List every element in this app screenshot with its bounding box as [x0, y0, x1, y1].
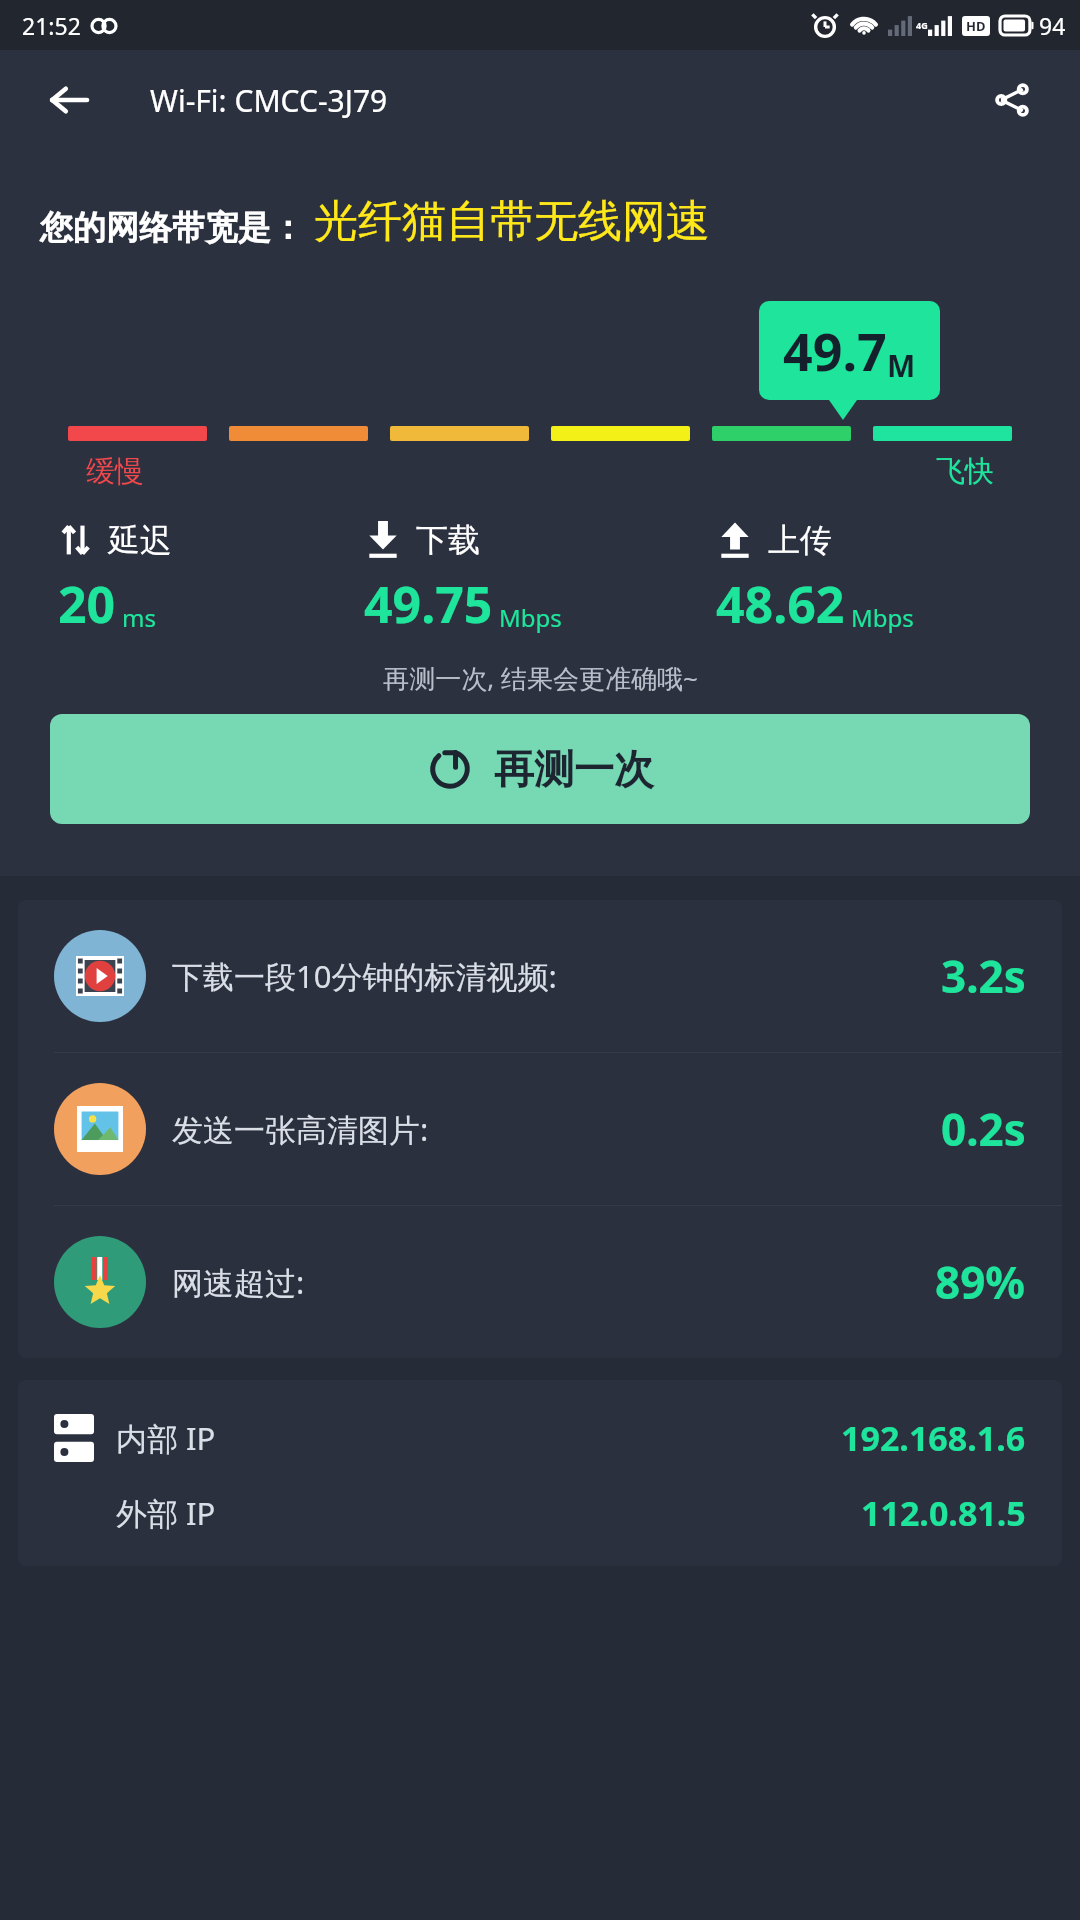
staticText: 48.62	[716, 570, 845, 638]
staticText: 内部 IP	[116, 1417, 216, 1459]
staticText: 49.7	[783, 315, 887, 386]
other: Server	[54, 1414, 94, 1462]
staticText: M	[887, 345, 916, 386]
staticText: HD	[966, 17, 986, 35]
staticText: Mbps	[851, 601, 914, 634]
staticText: 3.2s	[941, 946, 1026, 1006]
staticText: 您的网络带宽是：	[40, 207, 304, 249]
staticText: 再测一次, 结果会更准确哦~	[383, 660, 698, 696]
staticText: 光纤猫自带无线网速	[314, 194, 710, 249]
button[interactable]: 发送一张高清图片:	[18, 1053, 1062, 1205]
staticText: 上传	[768, 520, 832, 560]
button[interactable]: Back	[40, 71, 98, 129]
staticText: 飞快	[936, 453, 994, 490]
staticText: Wi-Fi: CMCC-3J79	[150, 80, 388, 121]
button[interactable]: 下载一段10分钟的标清视频:	[18, 900, 1062, 1052]
staticText: 192.168.1.6	[841, 1415, 1026, 1461]
staticText: 延迟	[108, 520, 172, 560]
staticText: 21:52	[22, 10, 81, 41]
staticText: 再测一次	[494, 744, 654, 794]
staticText: 89%	[935, 1252, 1026, 1312]
button[interactable]: Server	[18, 1404, 1062, 1472]
staticText: 外部 IP	[116, 1492, 216, 1534]
staticText: 4G	[916, 19, 928, 31]
staticText: ms	[122, 601, 156, 634]
staticText: 0.2s	[941, 1099, 1026, 1159]
button[interactable]: 网速超过:	[18, 1206, 1062, 1358]
staticText: 下载一段10分钟的标清视频:	[172, 955, 557, 997]
staticText: 发送一张高清图片:	[172, 1108, 429, 1150]
staticText: 94	[1039, 10, 1066, 41]
button[interactable]: 外部 IP	[18, 1484, 1062, 1542]
staticText: 下载	[416, 520, 480, 560]
staticText: 20	[58, 570, 116, 638]
staticText: 缓慢	[86, 453, 144, 490]
staticText: 网速超过:	[172, 1261, 305, 1303]
staticText: Mbps	[499, 601, 562, 634]
button[interactable]: 再测一次	[50, 714, 1030, 824]
staticText: 112.0.81.5	[861, 1490, 1026, 1536]
button[interactable]: Share	[982, 70, 1042, 130]
staticText: 49.75	[364, 570, 493, 638]
